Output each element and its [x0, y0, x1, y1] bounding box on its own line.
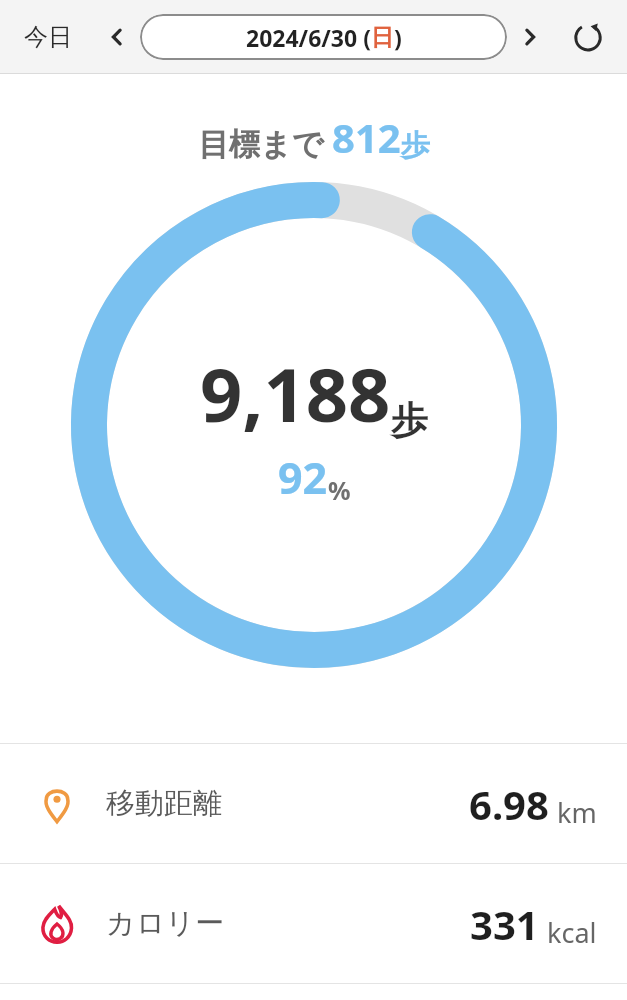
- button[interactable]: 移動距離: [0, 744, 627, 863]
- staticText: 331: [470, 897, 539, 951]
- staticText: 6.98: [469, 777, 549, 831]
- button[interactable]: 今日: [20, 14, 76, 60]
- staticText: 812: [332, 110, 401, 164]
- button[interactable]: 前の日: [96, 16, 138, 58]
- staticText: 歩: [401, 127, 430, 164]
- staticText: 9,188: [200, 343, 391, 444]
- staticText: カロリー: [106, 905, 225, 942]
- button[interactable]: 更新: [565, 14, 611, 60]
- button[interactable]: 2024/6/30 (: [140, 14, 507, 60]
- staticText: %: [328, 473, 351, 507]
- staticText: 今日: [24, 22, 72, 52]
- staticText: 移動距離: [106, 785, 222, 822]
- staticText: 92: [278, 448, 328, 507]
- button[interactable]: カロリー: [0, 864, 627, 983]
- staticText: 目標まで: [198, 125, 324, 164]
- staticText: ): [394, 22, 402, 53]
- button[interactable]: 次の日: [509, 16, 551, 58]
- staticText: kcal: [547, 914, 597, 951]
- staticText: km: [557, 794, 597, 831]
- staticText: 2024/6/30 (: [246, 22, 371, 53]
- staticText: 日: [371, 23, 394, 52]
- staticText: 歩: [391, 397, 428, 444]
